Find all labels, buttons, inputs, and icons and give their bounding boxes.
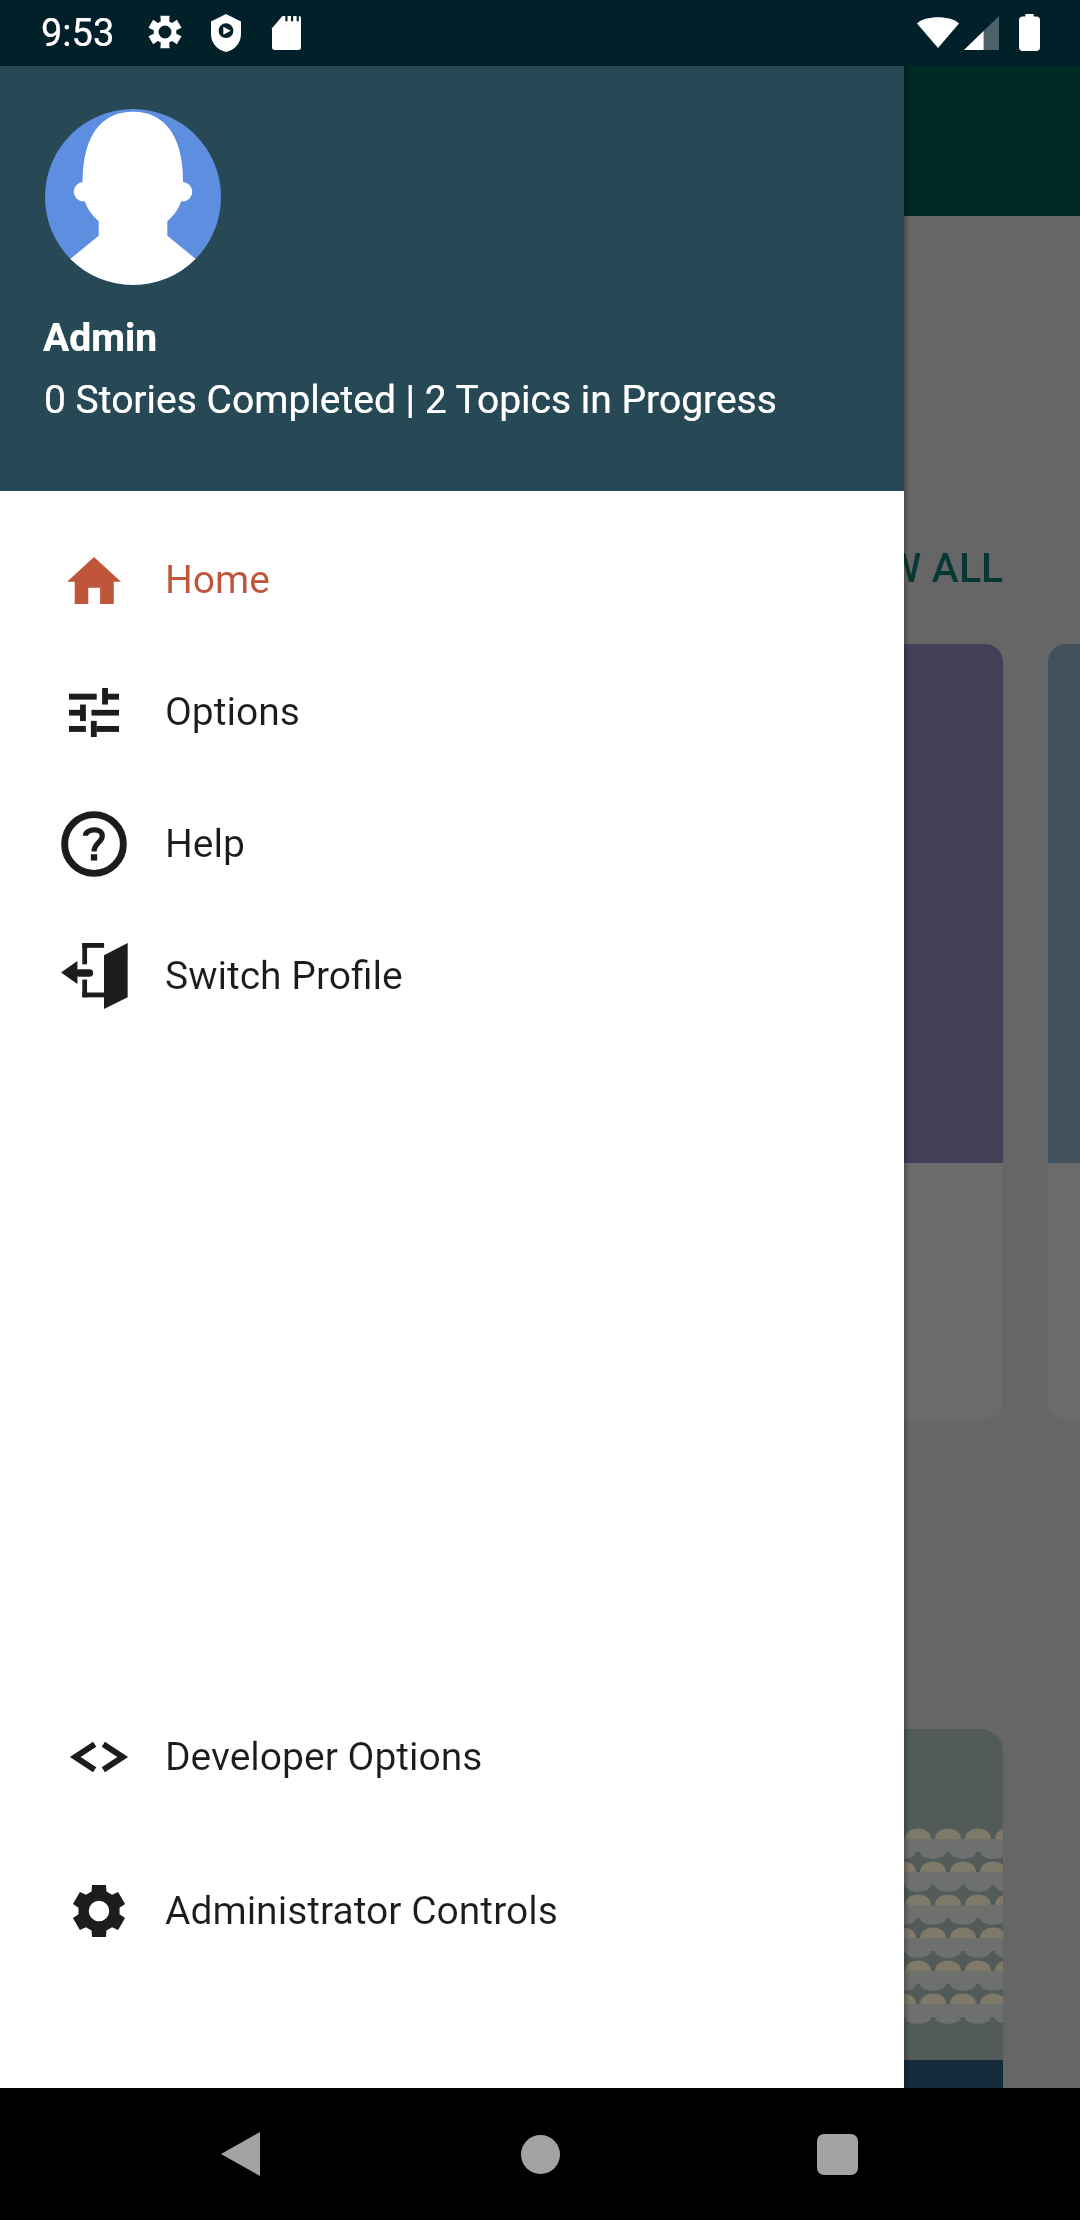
staticText: Options (165, 689, 300, 735)
button[interactable]: Admin (0, 66, 904, 491)
staticText: 0 Stories Completed | 2 Topics in Progre… (44, 377, 777, 423)
staticText: Admin (43, 315, 158, 361)
staticText: VIEW ALL (824, 544, 1004, 592)
button[interactable]: Back (200, 2114, 280, 2194)
button[interactable]: Recents (797, 2114, 877, 2194)
button[interactable]: Developer Options (0, 1680, 904, 1834)
button[interactable]: Home (500, 2114, 580, 2194)
staticText: Home (165, 557, 270, 603)
staticText: 9:53 (41, 11, 115, 56)
button[interactable]: VIEW ALL (802, 518, 1026, 618)
button[interactable]: Switch Profile (0, 910, 904, 1042)
staticText: Help (165, 821, 245, 867)
button[interactable]: Home (0, 514, 904, 646)
button[interactable]: Options (0, 646, 904, 778)
staticText: Switch Profile (165, 953, 403, 999)
button[interactable]: Help (0, 778, 904, 910)
button[interactable]: Administrator Controls (0, 1834, 904, 1988)
staticText: Administrator Controls (165, 1888, 558, 1934)
staticText: Developer Options (165, 1734, 483, 1780)
